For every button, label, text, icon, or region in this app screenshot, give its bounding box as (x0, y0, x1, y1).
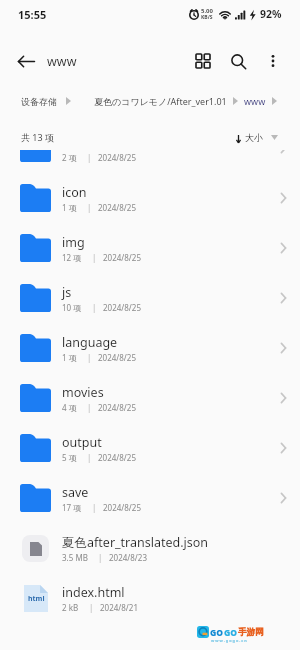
button[interactable]: js (0, 273, 300, 323)
staticText: | (87, 352, 92, 363)
staticText: 12 项 (62, 252, 82, 263)
staticText: www (47, 53, 77, 70)
staticText: 92% (260, 7, 282, 21)
staticText: 5 项 (62, 452, 77, 463)
staticText: icon (62, 184, 87, 201)
staticText: js (62, 284, 72, 301)
button[interactable]: output (0, 423, 300, 473)
staticText: 2024/8/25 (103, 302, 141, 313)
staticText: save (62, 484, 89, 501)
staticText: 2024/8/25 (98, 452, 136, 463)
staticText: GO (224, 627, 238, 639)
staticText: 2024/8/25 (103, 502, 141, 513)
staticText: | (87, 202, 92, 213)
staticText: | (87, 152, 92, 163)
staticText: KB/S (201, 14, 213, 21)
button[interactable]: Search (220, 39, 256, 83)
button[interactable]: More options (255, 39, 291, 83)
staticText: 2024/8/23 (109, 552, 147, 563)
button[interactable]: www (244, 95, 266, 107)
staticText: 5.00 (201, 7, 213, 15)
staticText: 共 13 项 (21, 131, 54, 143)
staticText: output (62, 434, 102, 451)
staticText: | (92, 252, 97, 263)
button[interactable]: language (0, 323, 300, 373)
staticText: 大小 (245, 132, 263, 143)
staticText: | (89, 602, 94, 613)
staticText: | (87, 452, 92, 463)
staticText: 2024/8/25 (98, 202, 136, 213)
staticText: | (92, 302, 97, 313)
staticText: 2024/8/21 (100, 602, 138, 613)
staticText: 2 kB (62, 602, 79, 613)
staticText: GO (210, 627, 224, 639)
button[interactable]: icon (0, 173, 300, 223)
staticText: 2024/8/25 (98, 352, 136, 363)
staticText: language (62, 334, 118, 351)
button[interactable]: html (0, 573, 300, 623)
button[interactable]: 大小 (236, 132, 278, 143)
button[interactable]: Back (6, 38, 46, 82)
button[interactable]: save (0, 473, 300, 523)
staticText: | (87, 402, 92, 413)
staticText: index.html (62, 584, 125, 601)
staticText: html (28, 594, 45, 604)
staticText: | (98, 552, 103, 563)
staticText: 2024/8/25 (98, 152, 136, 163)
button[interactable]: Grid view (185, 39, 221, 83)
staticText: 1 项 (62, 352, 77, 363)
staticText: 2024/8/25 (98, 402, 136, 413)
staticText: 2024/8/25 (103, 252, 141, 263)
staticText: 手游网 (238, 627, 264, 638)
staticText: 10 项 (62, 302, 82, 313)
staticText: w w w . g o g o . c n (211, 638, 247, 643)
button[interactable]: img (0, 223, 300, 273)
staticText: 2 项 (62, 152, 77, 163)
staticText: 17 项 (62, 502, 82, 513)
staticText: movies (62, 384, 104, 401)
staticText: img (62, 234, 85, 251)
button[interactable]: movies (0, 373, 300, 423)
button[interactable]: 夏色after_translated.json (0, 523, 300, 573)
button[interactable]: 夏色のコワレモノ/After_ver1.01 (94, 95, 227, 107)
staticText: 1 项 (62, 202, 77, 213)
button[interactable]: 设备存储 (21, 96, 57, 107)
staticText: 夏色after_translated.json (62, 534, 209, 551)
staticText: 3.5 MB (62, 552, 88, 563)
staticText: | (92, 502, 97, 513)
button[interactable]: css (0, 150, 300, 173)
staticText: 15:55 (18, 7, 47, 22)
staticText: 4 项 (62, 402, 77, 413)
